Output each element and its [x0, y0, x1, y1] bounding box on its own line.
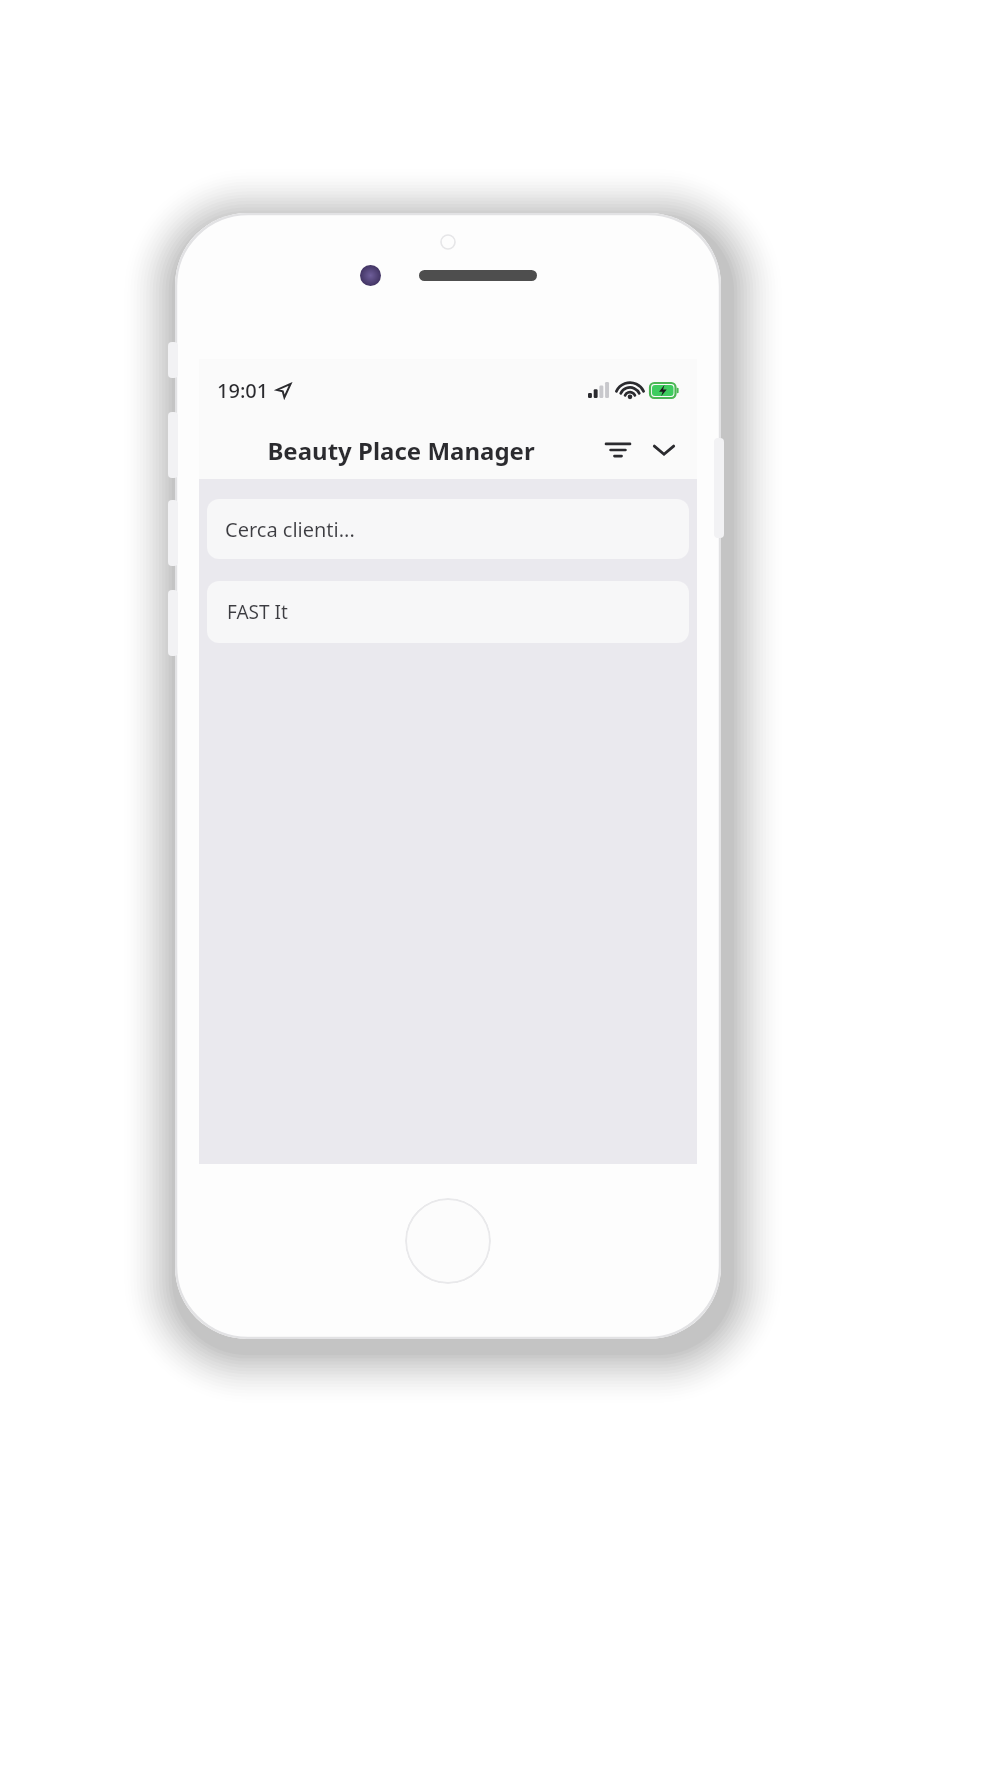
button[interactable]: Home	[405, 1198, 491, 1284]
staticText: Cerca clienti...	[225, 516, 355, 543]
button[interactable]: FAST It	[207, 581, 689, 643]
staticText: Beauty Place Manager	[267, 434, 535, 467]
staticText: FAST It	[227, 599, 288, 625]
button[interactable]: Filter	[601, 433, 635, 467]
button[interactable]: Expand menu	[647, 433, 681, 467]
staticText: 19:01	[217, 377, 269, 404]
button[interactable]: Cerca clienti...	[207, 499, 689, 559]
